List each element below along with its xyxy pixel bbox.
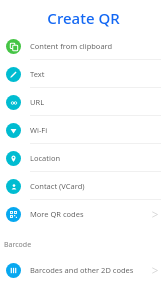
button[interactable]: Wi-Fi (0, 116, 166, 144)
button[interactable]: Content from clipboard (0, 32, 166, 60)
staticText: Location (30, 153, 61, 163)
staticText: URL (30, 97, 45, 107)
staticText: Text (30, 69, 45, 79)
staticText: Create QR (47, 8, 120, 28)
staticText: Wi-Fi (30, 125, 48, 135)
staticText: Contact (VCard) (30, 181, 85, 191)
button[interactable]: Barcodes and other 2D codes (0, 256, 166, 284)
staticText: Barcodes and other 2D codes (30, 265, 134, 275)
button[interactable]: More QR codes (0, 200, 166, 228)
staticText: Barcode (4, 240, 32, 250)
button[interactable]: Contact (VCard) (0, 172, 166, 200)
button[interactable]: Location (0, 144, 166, 172)
staticText: Content from clipboard (30, 41, 113, 51)
button[interactable]: URL (0, 88, 166, 116)
staticText: More QR codes (30, 209, 84, 219)
button[interactable]: Text (0, 60, 166, 88)
